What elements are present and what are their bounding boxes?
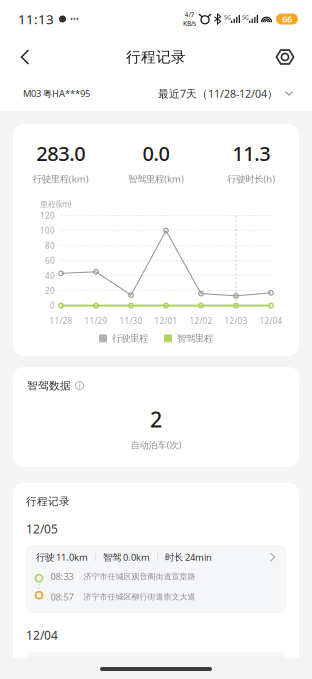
button[interactable]: 行驶 11.0km xyxy=(26,545,286,613)
staticText: 里程(km) xyxy=(40,199,71,210)
staticText: 11/29 xyxy=(84,316,107,326)
staticText: 行驶里程(km) xyxy=(33,173,89,185)
staticText: 自动泊车(次) xyxy=(130,438,181,451)
staticText: 11/28 xyxy=(49,316,72,326)
staticText: 行程记录 xyxy=(26,495,70,508)
staticText: 12/02 xyxy=(189,316,212,326)
staticText: 5G xyxy=(224,14,231,21)
staticText: 12/03 xyxy=(224,316,247,326)
button[interactable]: 最近7天（11/28-12/04） xyxy=(158,86,294,101)
staticText: 时长 24min xyxy=(165,551,212,563)
staticText: 12/04 xyxy=(26,627,58,643)
button[interactable]: Settings xyxy=(271,43,299,71)
button[interactable]: Back xyxy=(11,43,39,71)
staticText: 智驾里程(km) xyxy=(128,173,184,185)
staticText: 济宁市任城区观音阁街道宣堂路 xyxy=(83,572,195,581)
staticText: 08:57 xyxy=(50,591,73,603)
staticText: 12/05 xyxy=(26,521,58,537)
staticText: 智驾数据 xyxy=(27,379,71,392)
staticText: 80 xyxy=(45,240,55,251)
staticText: 4/7 xyxy=(184,10,194,19)
staticText: 0 xyxy=(50,300,55,311)
staticText: 智驾 0.0km xyxy=(103,551,150,563)
staticText: KB/s xyxy=(183,19,196,28)
staticText: 120 xyxy=(40,210,55,221)
staticText: 11.3 xyxy=(232,140,270,167)
staticText: i xyxy=(78,380,80,391)
staticText: 行程记录 xyxy=(126,48,186,66)
staticText: 最近7天（11/28-12/04） xyxy=(158,86,278,101)
staticText: 5G xyxy=(242,14,249,21)
staticText: ••• xyxy=(70,14,79,24)
button[interactable]: More info xyxy=(74,380,85,391)
staticText: 行驶 11.0km xyxy=(36,551,88,563)
staticText: 40 xyxy=(45,270,55,281)
staticText: 100 xyxy=(40,225,55,236)
staticText: 行驶时长(h) xyxy=(227,173,275,185)
staticText: 60 xyxy=(45,255,55,266)
staticText: 283.0 xyxy=(36,140,85,167)
staticText: M03 粤HA***95 xyxy=(23,87,90,100)
button[interactable]: M03 粤HA***95 xyxy=(23,87,90,100)
staticText: 20 xyxy=(45,285,55,296)
staticText: 12/01 xyxy=(154,316,177,326)
staticText: 济宁市任城区柳行街道崇文大道 xyxy=(83,592,195,602)
staticText: 2 xyxy=(150,405,162,433)
staticText: 11/30 xyxy=(119,316,142,326)
staticText: 11:13 xyxy=(18,10,54,28)
staticText: 智驾里程 xyxy=(177,333,213,344)
staticText: 08:33 xyxy=(50,570,73,583)
staticText: 行驶里程 xyxy=(112,333,148,344)
staticText: 12/04 xyxy=(259,316,282,326)
staticText: 0.0 xyxy=(142,140,169,167)
staticText: 66 xyxy=(282,13,292,25)
